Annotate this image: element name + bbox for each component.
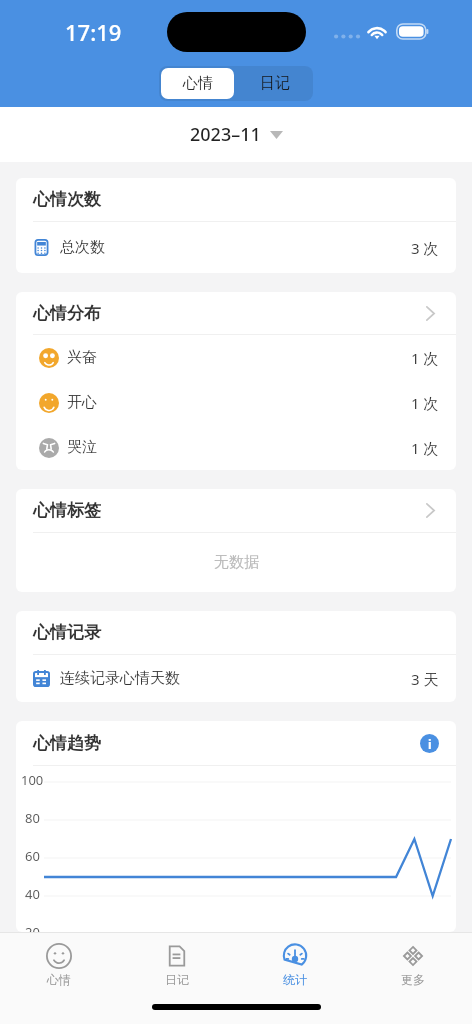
staticText: 1 次: [411, 348, 439, 368]
staticText: 3 天: [411, 669, 439, 689]
button[interactable]: 日记: [118, 933, 236, 996]
staticText: i: [428, 736, 432, 752]
staticText: 1 次: [411, 393, 439, 413]
staticText: 80: [25, 809, 40, 827]
staticText: 100: [21, 771, 44, 789]
staticText: 兴奋: [67, 348, 97, 367]
staticText: 60: [25, 847, 40, 865]
staticText: 总次数: [60, 238, 105, 257]
staticText: 心情趋势: [33, 733, 101, 754]
staticText: 2023–11: [190, 122, 261, 147]
button[interactable]: 心情: [161, 68, 234, 99]
staticText: 哭泣: [67, 438, 97, 457]
button[interactable]: 总次数: [16, 222, 456, 273]
staticText: 20: [25, 923, 40, 932]
button[interactable]: 更多: [354, 933, 472, 996]
button[interactable]: 2023–11: [190, 122, 283, 147]
staticText: 心情次数: [33, 189, 101, 210]
staticText: 1 次: [411, 438, 439, 458]
staticText: 连续记录心情天数: [60, 669, 180, 688]
staticText: 心情: [183, 74, 213, 93]
button[interactable]: 兴奋: [16, 335, 456, 380]
button[interactable]: 日记: [236, 66, 313, 101]
staticText: 无数据: [214, 553, 259, 572]
staticText: 心情记录: [33, 622, 101, 643]
staticText: 日记: [165, 972, 189, 987]
button[interactable]: 哭泣: [16, 425, 456, 470]
button[interactable]: 心情: [0, 933, 118, 996]
button[interactable]: 连续记录心情天数: [16, 655, 456, 702]
staticText: 3 次: [411, 238, 439, 258]
staticText: 心情: [47, 972, 71, 987]
staticText: 心情分布: [33, 303, 101, 324]
staticText: 开心: [67, 393, 97, 412]
button[interactable]: 统计: [236, 933, 354, 996]
staticText: 日记: [260, 74, 290, 93]
staticText: 更多: [401, 972, 425, 987]
staticText: 统计: [283, 972, 307, 987]
button[interactable]: 开心: [16, 380, 456, 425]
staticText: 17:19: [65, 17, 122, 47]
staticText: 心情标签: [33, 500, 101, 521]
button[interactable]: Info: [420, 734, 439, 753]
staticText: 40: [25, 885, 40, 903]
